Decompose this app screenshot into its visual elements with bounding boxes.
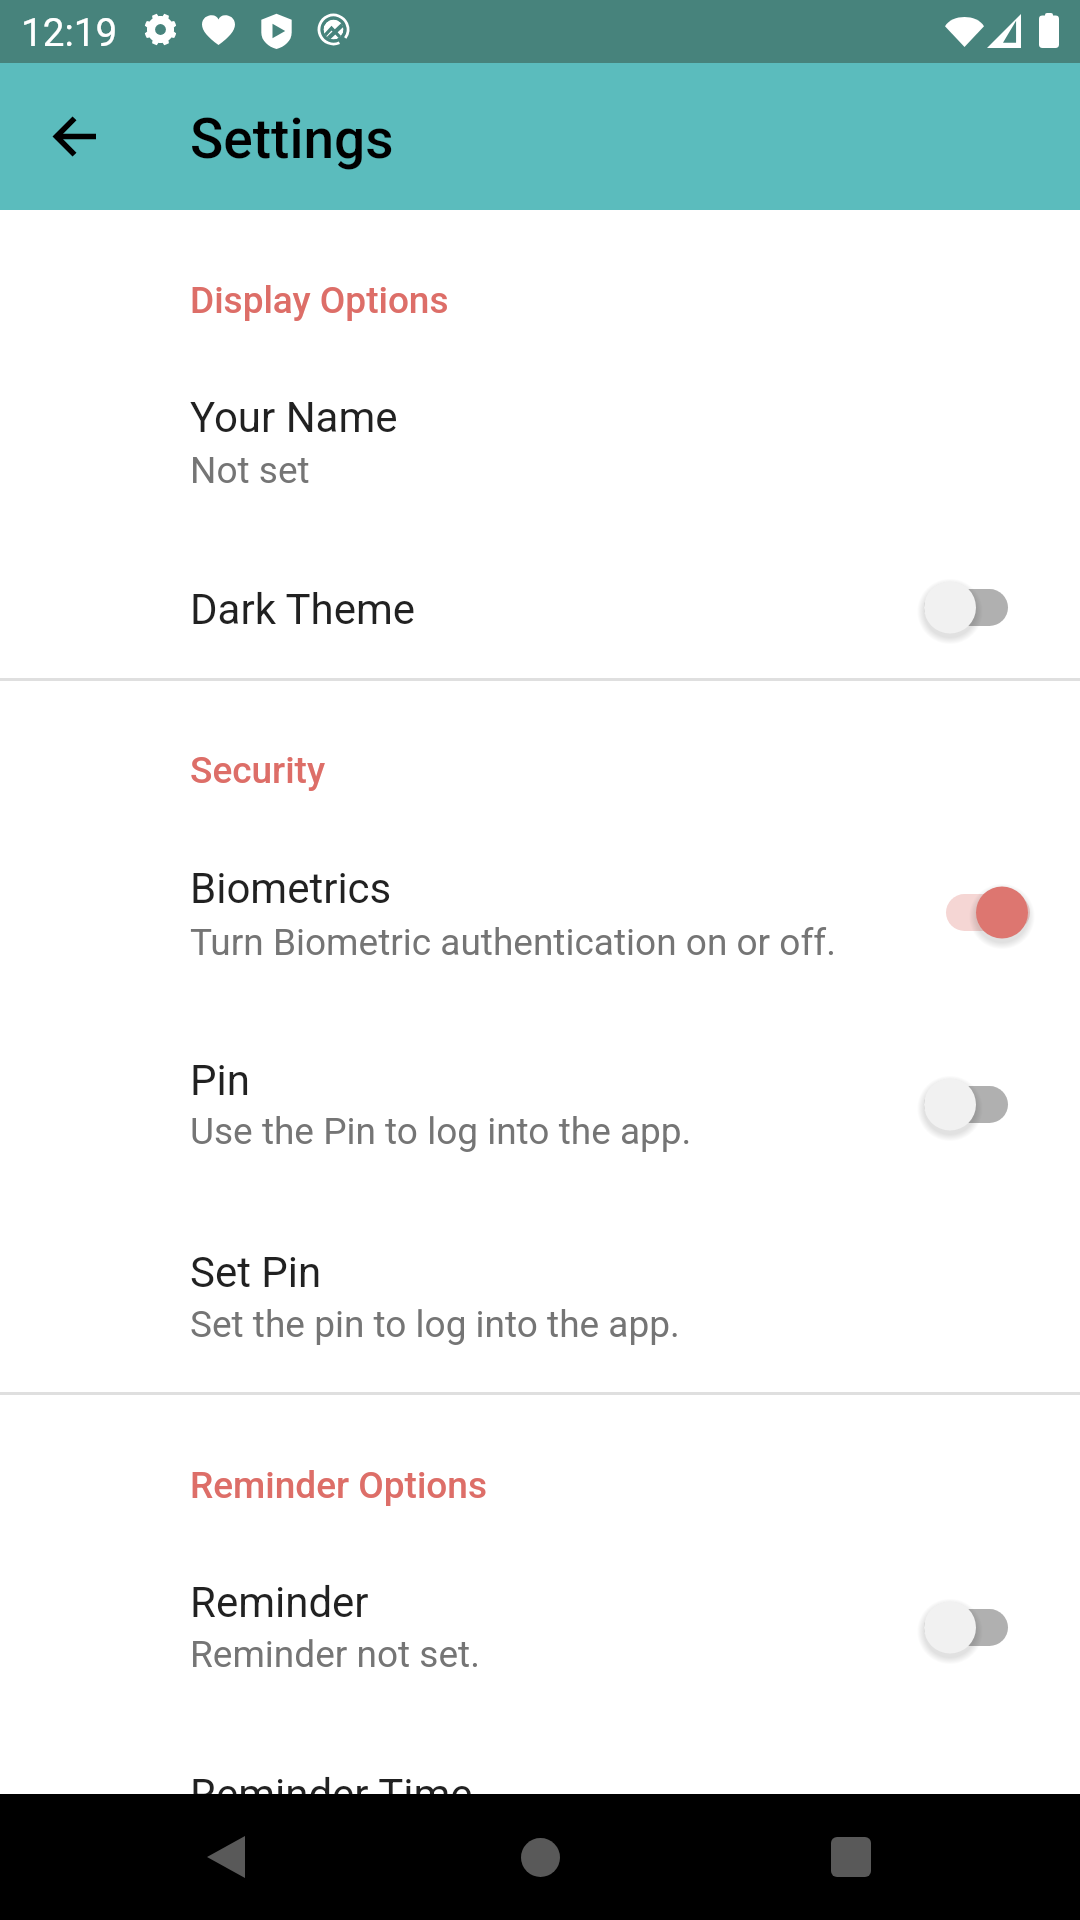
button[interactable]: Toggle	[912, 868, 1064, 958]
button[interactable]: Dark Theme	[0, 560, 1080, 642]
button[interactable]: Reminder Time	[0, 1745, 1080, 1879]
staticText: Not set	[190, 449, 310, 492]
button[interactable]: Display Options	[0, 253, 1080, 319]
staticText: Settings	[190, 107, 394, 171]
button[interactable]: Biometrics	[0, 839, 1080, 975]
button[interactable]: Pin	[0, 1031, 1080, 1164]
button[interactable]: Toggle	[890, 563, 1042, 653]
button[interactable]: Back	[30, 92, 118, 180]
staticText: Set Pin	[190, 1248, 322, 1297]
staticText: Your Name	[190, 393, 398, 442]
button[interactable]: Reminder Options	[0, 1438, 1080, 1504]
staticText: Pin	[190, 1056, 250, 1105]
staticText: 12:19	[21, 10, 118, 55]
staticText: Use the Pin to log into the app.	[190, 1110, 692, 1153]
staticText: Reminder	[190, 1578, 369, 1627]
button[interactable]: Home	[485, 1802, 595, 1912]
button[interactable]: Toggle	[890, 1060, 1042, 1150]
button[interactable]: Your Name	[0, 368, 1080, 503]
staticText: Biometrics	[190, 864, 392, 913]
button[interactable]: Security	[0, 723, 1080, 789]
button[interactable]: Back	[171, 1802, 281, 1912]
staticText: Security	[190, 749, 326, 792]
staticText: Turn Biometric authentication on or off.	[190, 921, 836, 964]
staticText: Reminder not set.	[190, 1633, 480, 1676]
staticText: Reminder Options	[190, 1464, 487, 1507]
staticText: Reminder Time	[190, 1770, 473, 1819]
staticText: Set the pin to log into the app.	[190, 1303, 680, 1346]
button[interactable]: Recent apps	[796, 1802, 906, 1912]
staticText: Display Options	[190, 279, 449, 322]
button[interactable]: Toggle	[890, 1583, 1042, 1673]
button[interactable]: Reminder	[0, 1553, 1080, 1687]
staticText: Dark Theme	[190, 585, 416, 634]
staticText: Not set	[190, 1825, 310, 1868]
button[interactable]: Set Pin	[0, 1223, 1080, 1357]
